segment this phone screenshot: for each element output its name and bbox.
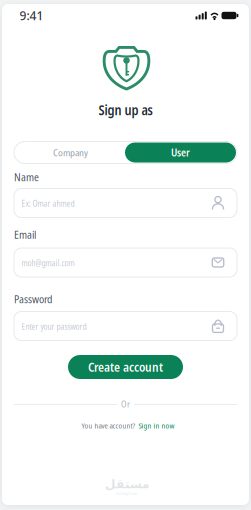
staticText: Password	[14, 292, 52, 306]
staticText: Or	[121, 398, 130, 410]
staticText: Ex: Omar ahmed	[21, 198, 74, 209]
staticText: مستقل	[104, 477, 148, 491]
staticText: mostaql.com	[116, 490, 137, 496]
staticText: You have account?	[81, 420, 135, 431]
staticText: Name	[14, 170, 39, 184]
staticText: Company	[53, 146, 88, 159]
button[interactable]: User	[125, 142, 236, 162]
staticText: User	[171, 145, 190, 160]
staticText: moh@gmail.com	[21, 257, 74, 269]
staticText: Email	[14, 227, 36, 242]
staticText: Sign in now	[138, 420, 174, 431]
staticText: 9:41	[19, 7, 43, 23]
staticText: Sign up as	[98, 101, 152, 119]
staticText: Enter your password	[21, 321, 86, 332]
button[interactable]: Sign in now	[138, 420, 174, 431]
button[interactable]: Company	[18, 142, 123, 162]
button[interactable]: Create account	[68, 355, 183, 379]
staticText: Create account	[88, 359, 163, 375]
